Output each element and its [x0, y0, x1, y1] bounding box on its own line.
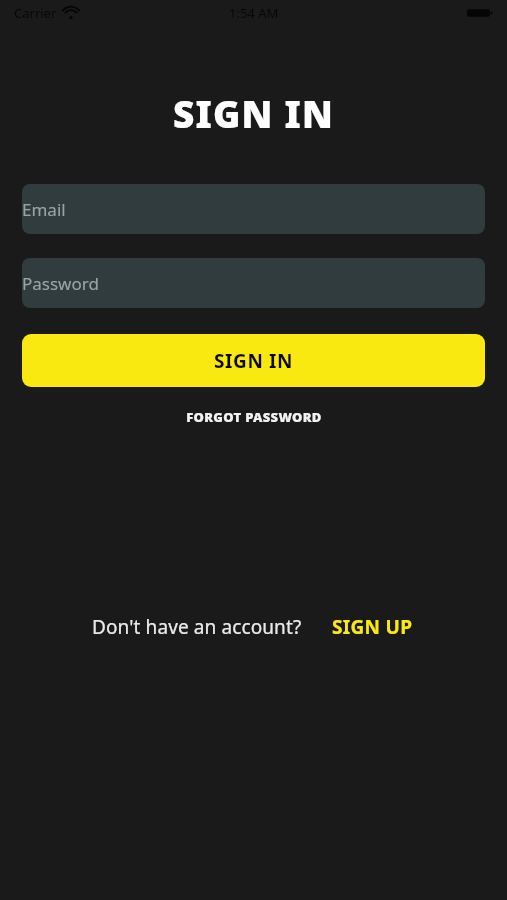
staticText: SIGN UP [332, 614, 413, 640]
button[interactable]: Email [22, 184, 485, 234]
button[interactable]: SIGN IN [22, 334, 485, 387]
staticText: Password [22, 272, 99, 295]
button[interactable]: SIGN UP [330, 612, 415, 642]
staticText: Email [22, 198, 66, 221]
button[interactable]: FORGOT PASSWORD [22, 408, 485, 426]
staticText: Don't have an account? [92, 614, 302, 640]
staticText: SIGN IN [0, 88, 507, 138]
staticText: SIGN IN [214, 348, 294, 374]
staticText: Carrier [14, 4, 57, 22]
other: Battery [467, 7, 493, 19]
other: Wi-Fi [62, 6, 80, 20]
button[interactable]: Password [22, 258, 485, 308]
staticText: 1:54 AM [229, 4, 279, 22]
staticText: FORGOT PASSWORD [186, 408, 322, 426]
